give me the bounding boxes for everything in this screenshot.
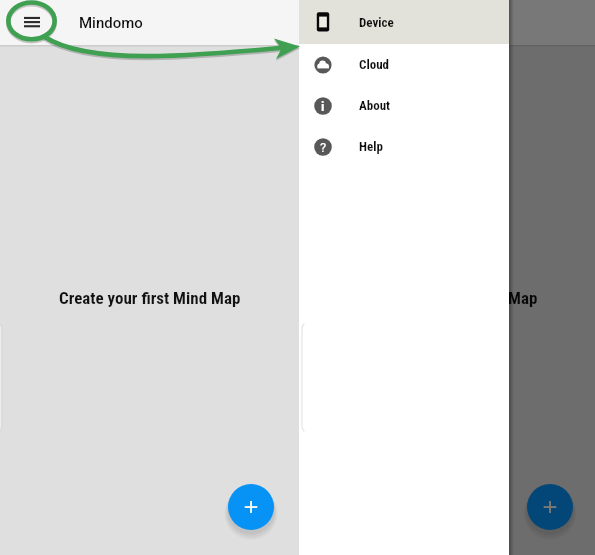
button[interactable]: Create new mind map <box>228 484 274 530</box>
button[interactable]: Cloud <box>299 44 509 85</box>
staticText: Create your first Mind Map <box>59 288 241 308</box>
staticText: Mindomo <box>378 14 442 32</box>
staticText: Create your first Mind Map <box>356 288 538 308</box>
staticText: ? <box>320 140 327 155</box>
button[interactable]: Open navigation drawer <box>311 3 351 43</box>
staticText: Mindomo <box>79 14 143 32</box>
button[interactable]: Open navigation drawer <box>12 3 52 43</box>
staticText: Cloud <box>359 57 389 72</box>
button[interactable]: Device <box>299 0 509 44</box>
staticText: i <box>321 99 325 114</box>
button[interactable]: Create new mind map <box>527 484 573 530</box>
staticText: Help <box>359 139 383 154</box>
staticText: About <box>359 98 391 113</box>
staticText: Device <box>359 15 394 30</box>
button[interactable]: i <box>299 85 509 126</box>
button[interactable]: ? <box>299 126 509 167</box>
